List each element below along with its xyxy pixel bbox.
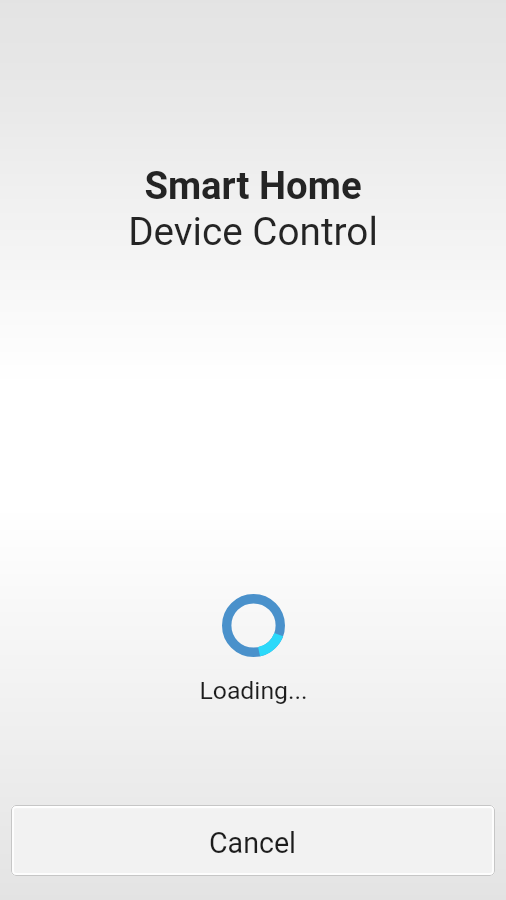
staticText: Cancel [209, 826, 297, 860]
staticText: Loading... [199, 676, 308, 705]
staticText: Smart Home [144, 163, 362, 208]
button[interactable]: Cancel [11, 805, 495, 876]
other: Loading indicator [222, 594, 285, 657]
staticText: Device Control [128, 209, 378, 254]
